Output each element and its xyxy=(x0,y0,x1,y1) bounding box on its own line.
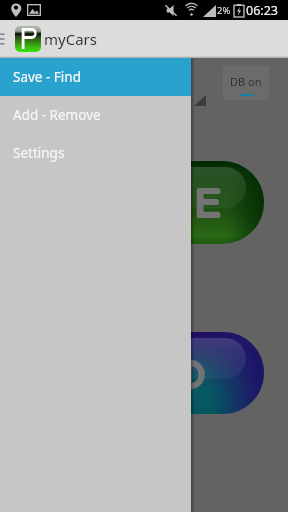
staticText: myCars xyxy=(44,29,97,49)
staticText: Settings xyxy=(13,144,65,162)
button[interactable] xyxy=(130,332,264,414)
staticText: 06:23 xyxy=(246,2,278,19)
button[interactable]: Open navigation menu xyxy=(0,20,5,58)
button[interactable] xyxy=(130,161,264,244)
button[interactable]: Save - Find xyxy=(0,58,191,96)
staticText: Add - Remove xyxy=(13,106,101,124)
button[interactable]: Add - Remove xyxy=(0,96,191,134)
button[interactable]: DB on xyxy=(223,66,269,100)
button[interactable]: Settings xyxy=(0,134,191,172)
staticText: DB on xyxy=(230,74,262,89)
staticText: 2% xyxy=(217,4,231,17)
staticText: Save - Find xyxy=(13,68,81,86)
button[interactable]: Resize xyxy=(194,95,206,106)
